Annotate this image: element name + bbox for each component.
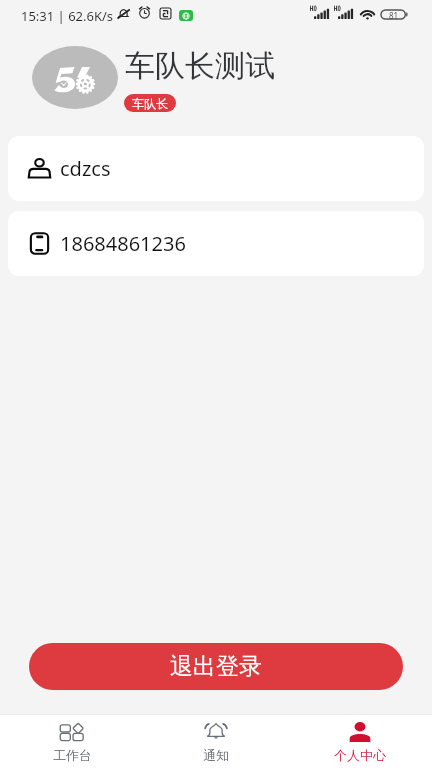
staticText: 退出登录 — [170, 652, 262, 681]
staticText: cdzcs — [60, 155, 111, 182]
button[interactable]: 个人中心 — [288, 715, 432, 768]
staticText: 通知 — [203, 747, 229, 763]
staticText: 81 — [389, 10, 399, 19]
button[interactable]: 通知 — [144, 715, 288, 768]
staticText: 车队长测试 — [125, 47, 275, 85]
staticText: 15:31 | 62.6K/s — [21, 7, 114, 25]
staticText: 工作台 — [53, 747, 92, 763]
button[interactable]: 工作台 — [0, 715, 144, 768]
button[interactable]: Account — [8, 136, 424, 201]
staticText: 车队长 — [132, 96, 168, 111]
other: Account — [27, 156, 52, 181]
button[interactable]: 退出登录 — [29, 643, 403, 690]
button[interactable]: Phone — [8, 211, 424, 276]
staticText: 18684861236 — [60, 230, 186, 257]
other: Phone — [27, 231, 52, 256]
staticText: 个人中心 — [334, 747, 386, 763]
